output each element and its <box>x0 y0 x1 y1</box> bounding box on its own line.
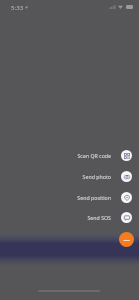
button[interactable]: Scan QR code <box>36 148 132 162</box>
staticText: Send SOS <box>36 214 111 221</box>
button[interactable]: Close actions menu <box>119 232 134 247</box>
button[interactable]: Send position <box>36 190 132 204</box>
button[interactable]: Send SOS <box>36 210 132 224</box>
staticText: Scan QR code <box>36 152 111 159</box>
staticText: 5:33 <box>11 3 24 11</box>
staticText: Send photo <box>36 173 111 180</box>
button[interactable]: Send photo <box>36 169 132 183</box>
staticText: Send position <box>36 194 111 201</box>
